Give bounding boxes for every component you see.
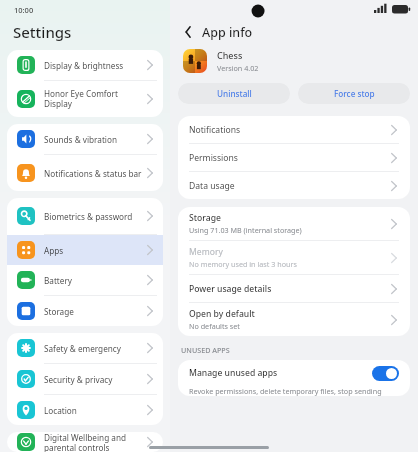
staticText: Digital Wellbeing and parental controls — [44, 432, 145, 452]
staticText: Force stop — [334, 88, 375, 99]
staticText: Revoke permissions, delete temporary fil… — [189, 386, 382, 396]
button[interactable]: Apps — [7, 235, 163, 265]
button[interactable]: Data usage — [178, 172, 410, 199]
button[interactable]: Biometrics & password — [7, 198, 163, 234]
staticText: Storage — [189, 212, 221, 224]
staticText: Apps — [44, 245, 145, 256]
staticText: Settings — [13, 22, 72, 42]
button[interactable]: Permissions — [178, 144, 410, 171]
button[interactable]: Storage — [7, 296, 163, 326]
button[interactable]: Notifications — [178, 116, 410, 143]
button[interactable]: Display & brightness — [7, 50, 163, 80]
staticText: Display & brightness — [44, 60, 145, 71]
staticText: Version 4.02 — [217, 63, 259, 73]
staticText: Safety & emergency — [44, 343, 145, 354]
staticText: Storage — [44, 306, 145, 317]
staticText: Sounds & vibration — [44, 134, 145, 145]
staticText: Battery — [44, 275, 145, 286]
button[interactable]: Manage unused apps toggle — [372, 366, 399, 381]
staticText: Security & privacy — [44, 374, 145, 385]
staticText: Open by default — [189, 308, 255, 320]
staticText: Chess — [217, 49, 243, 61]
button[interactable]: Digital Wellbeing and parental controls — [7, 432, 163, 452]
button[interactable]: Safety & emergency — [7, 333, 163, 363]
button[interactable]: Battery — [7, 265, 163, 295]
staticText: No memory used in last 3 hours — [189, 259, 297, 269]
staticText: Data usage — [189, 180, 235, 192]
staticText: No defaults set — [189, 321, 240, 331]
staticText: Notifications — [189, 124, 241, 136]
staticText: Biometrics & password — [44, 211, 145, 222]
button[interactable]: Force stop — [298, 83, 410, 104]
button[interactable]: Sounds & vibration — [7, 124, 163, 154]
staticText: UNUSED APPS — [181, 345, 230, 355]
button[interactable]: Manage unused apps — [178, 360, 410, 386]
staticText: Location — [44, 405, 145, 416]
button[interactable]: Security & privacy — [7, 364, 163, 394]
staticText: Permissions — [189, 152, 238, 164]
staticText: Manage unused apps — [189, 367, 372, 379]
staticText: App info — [202, 24, 253, 41]
staticText: Uninstall — [217, 88, 252, 99]
button[interactable]: Memory — [178, 241, 410, 274]
button[interactable]: Uninstall — [178, 83, 290, 104]
button[interactable]: Honor Eye Comfort Display — [7, 81, 163, 117]
button[interactable]: Power usage details — [178, 275, 410, 302]
staticText: Notifications & status bar — [44, 168, 145, 179]
button[interactable]: Notifications & status bar — [7, 155, 163, 191]
button[interactable]: Storage — [178, 207, 410, 240]
button[interactable]: Location — [7, 395, 163, 425]
staticText: Power usage details — [189, 283, 272, 295]
staticText: Using 71.03 MB (internal storage) — [189, 225, 302, 235]
staticText: 10:00 — [14, 5, 34, 15]
button[interactable]: Open by default — [178, 303, 410, 336]
staticText: Memory — [189, 246, 223, 258]
button[interactable]: Back — [180, 23, 198, 41]
staticText: Honor Eye Comfort Display — [44, 88, 145, 110]
